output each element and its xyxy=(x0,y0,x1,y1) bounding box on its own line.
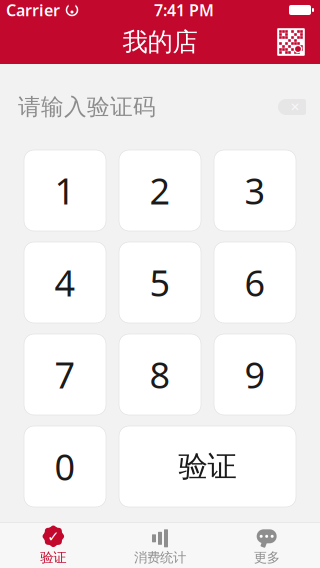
staticText: 3 xyxy=(244,167,265,214)
staticText: 9 xyxy=(244,351,265,398)
button[interactable]: 4 xyxy=(24,242,106,323)
staticText: 4 xyxy=(54,259,75,306)
staticText: 6 xyxy=(244,259,265,306)
button[interactable]: 更多 xyxy=(213,523,320,568)
staticText: 7:41 PM xyxy=(154,0,214,21)
button[interactable]: 消费统计 xyxy=(107,523,213,568)
staticText: 1 xyxy=(54,167,75,214)
staticText: 请输入验证码 xyxy=(18,93,156,121)
staticText: 8 xyxy=(149,351,170,398)
staticText: 0 xyxy=(54,443,75,490)
button[interactable]: 6 xyxy=(214,242,296,323)
staticText: 7 xyxy=(54,351,75,398)
staticText: 2 xyxy=(149,167,170,214)
button[interactable]: ✓ xyxy=(0,523,107,568)
button[interactable]: 3 xyxy=(214,150,296,231)
staticText: Carrier xyxy=(6,0,60,21)
button[interactable]: 2 xyxy=(119,150,201,231)
button[interactable]: 验证 xyxy=(119,426,296,507)
button[interactable]: 0 xyxy=(24,426,106,507)
staticText: ✕ xyxy=(290,100,300,114)
staticText: ✓ xyxy=(47,528,59,545)
button[interactable]: 7 xyxy=(24,334,106,415)
staticText: 消费统计 xyxy=(134,549,186,566)
staticText: 我的店 xyxy=(122,26,197,57)
staticText: 验证 xyxy=(40,549,66,566)
button[interactable]: 5 xyxy=(119,242,201,323)
button[interactable]: 9 xyxy=(214,334,296,415)
button[interactable]: 扫描二维码 xyxy=(274,20,320,64)
staticText: 更多 xyxy=(254,549,280,566)
button[interactable]: 8 xyxy=(119,334,201,415)
staticText: 验证 xyxy=(178,448,236,484)
button[interactable]: 清除 xyxy=(270,85,320,129)
staticText: 5 xyxy=(149,259,170,306)
button[interactable]: 1 xyxy=(24,150,106,231)
